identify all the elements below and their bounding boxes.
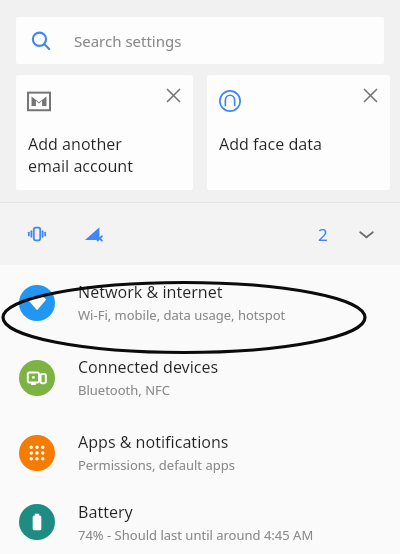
staticText: Search settings bbox=[74, 31, 182, 51]
button[interactable]: Connected devices bbox=[0, 340, 400, 415]
staticText: Bluetooth, NFC bbox=[78, 381, 171, 399]
staticText: 74% - Should last until around 4:45 AM bbox=[78, 526, 314, 544]
button[interactable]: Network & internet bbox=[0, 265, 400, 340]
staticText: Battery bbox=[78, 501, 133, 523]
button[interactable]: Battery bbox=[0, 490, 400, 554]
button[interactable]: Apps & notifications bbox=[0, 415, 400, 490]
staticText: 2 bbox=[318, 223, 328, 246]
button[interactable]: Dismiss bbox=[207, 75, 390, 190]
button[interactable]: Dismiss bbox=[159, 81, 187, 109]
button[interactable]: Vibrate mode bbox=[20, 217, 54, 251]
staticText: Add face data bbox=[219, 133, 322, 155]
button[interactable]: Search settings bbox=[16, 17, 384, 64]
staticText: Permissions, default apps bbox=[78, 456, 235, 474]
staticText: Add another email account bbox=[28, 133, 133, 177]
button[interactable]: Mobile data off bbox=[76, 217, 110, 251]
button[interactable]: Dismiss bbox=[356, 81, 384, 109]
staticText: Wi-Fi, mobile, data usage, hotspot bbox=[78, 306, 286, 324]
button[interactable]: Expand bbox=[352, 220, 380, 248]
staticText: Connected devices bbox=[78, 356, 219, 378]
staticText: Network & internet bbox=[78, 281, 223, 303]
staticText: Apps & notifications bbox=[78, 431, 229, 453]
button[interactable]: Dismiss bbox=[16, 75, 193, 190]
